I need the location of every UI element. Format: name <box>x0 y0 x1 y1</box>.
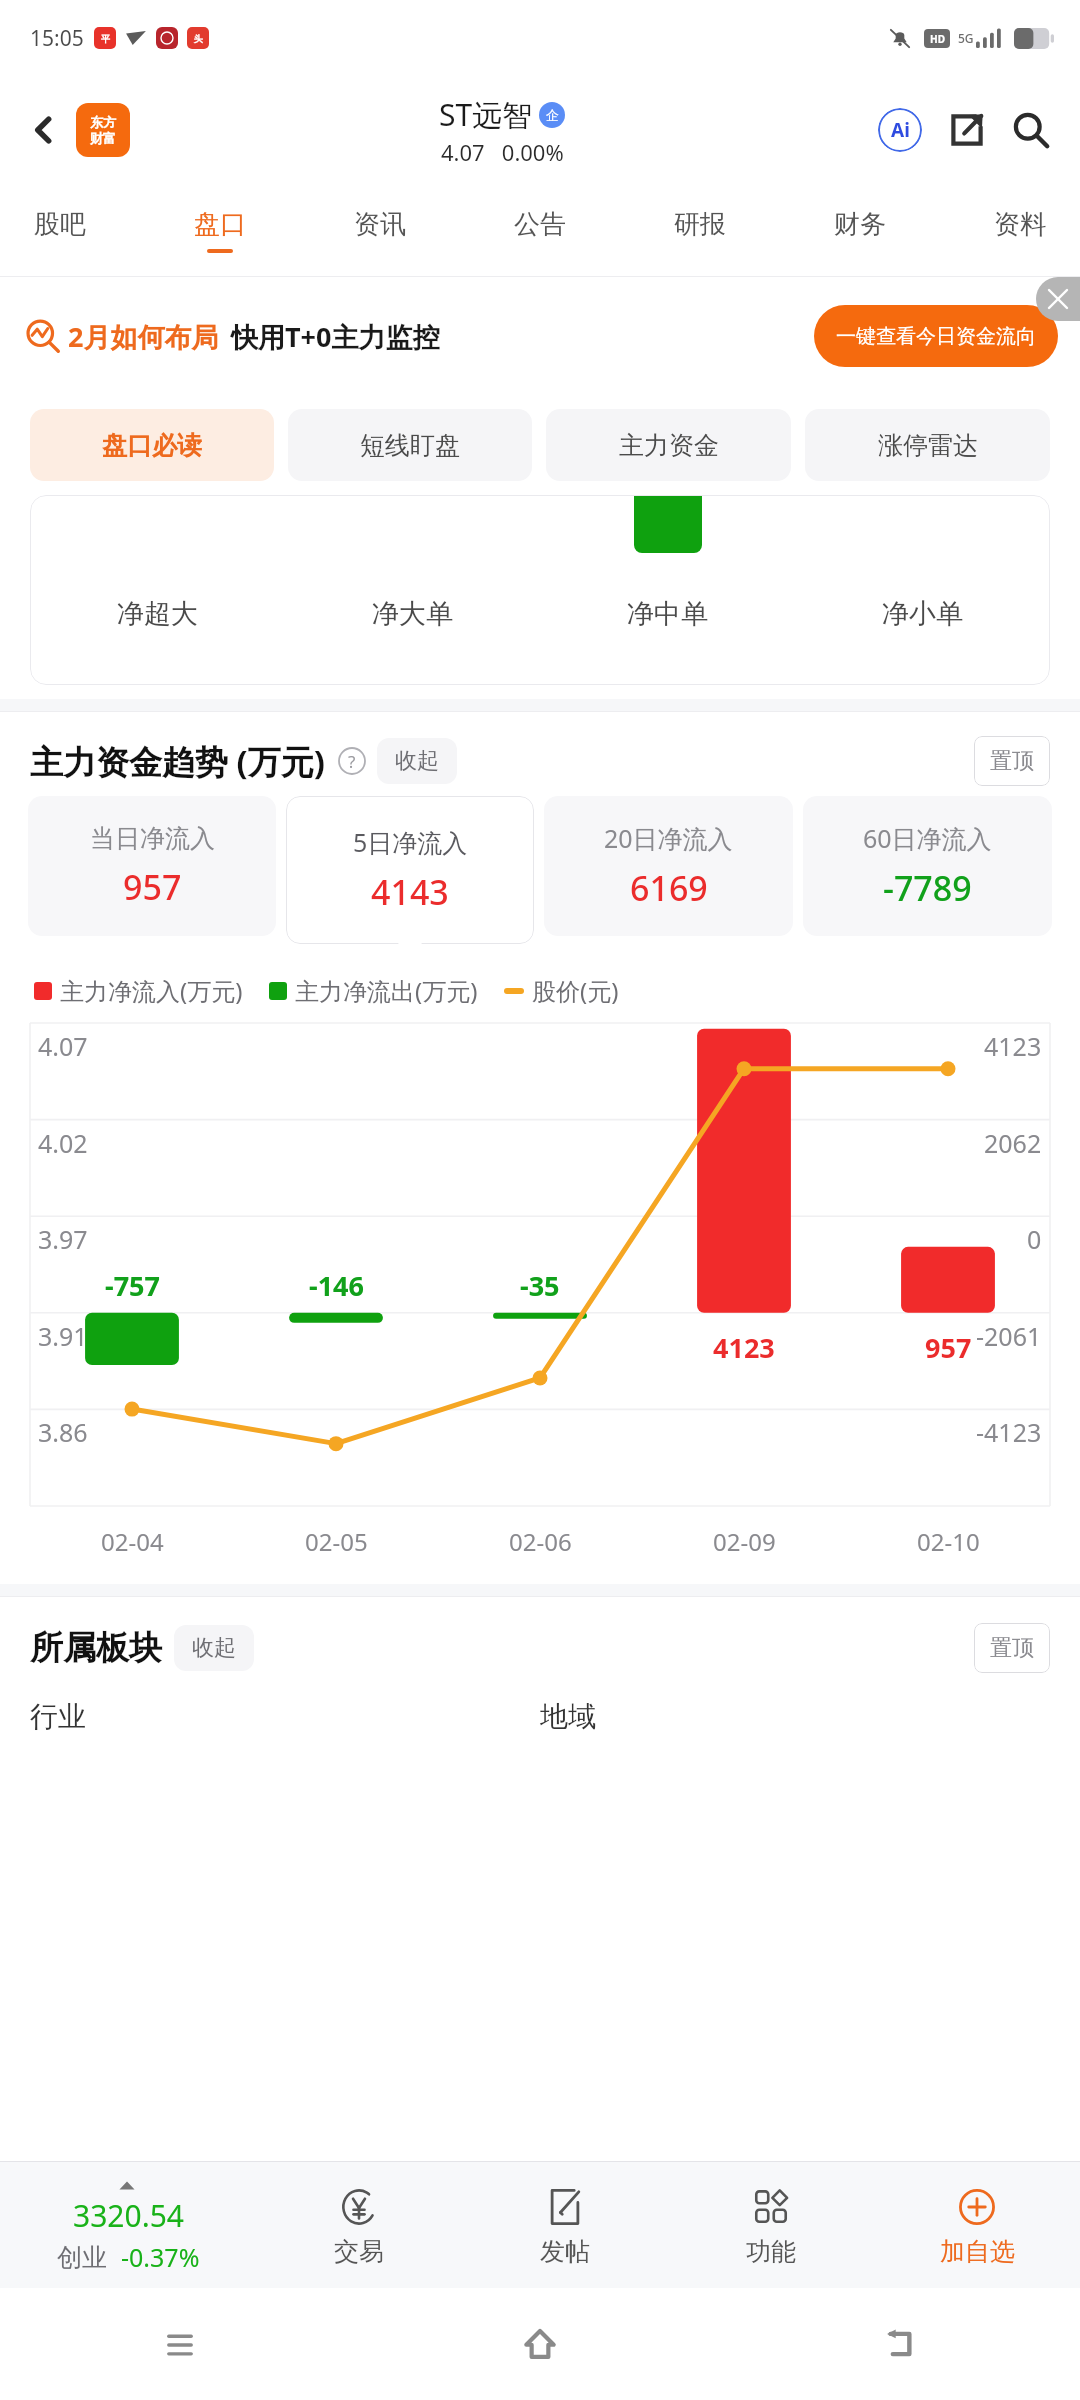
button[interactable]: 股吧 <box>34 184 86 276</box>
button[interactable]: 交易 <box>256 2162 462 2288</box>
button[interactable]: Back <box>720 2288 1080 2400</box>
staticText: 盘口 <box>194 208 246 241</box>
staticText: 5日净流入 <box>353 825 468 859</box>
button[interactable]: 加自选 <box>874 2162 1080 2288</box>
staticText: 02-09 <box>713 1525 776 1558</box>
button[interactable]: Search <box>1006 105 1056 155</box>
button[interactable]: Home <box>360 2288 720 2400</box>
button[interactable]: Share <box>942 105 992 155</box>
staticText: 957 <box>925 1329 972 1366</box>
staticText: 0 <box>1027 1222 1042 1256</box>
staticText: 6169 <box>630 865 708 911</box>
staticText: -35 <box>520 1267 560 1304</box>
staticText: 4123 <box>713 1329 775 1366</box>
staticText: 957 <box>123 864 182 910</box>
staticText: 15:05 <box>30 24 84 53</box>
staticText: 净大单 <box>372 597 453 631</box>
staticText: -2061 <box>976 1319 1042 1353</box>
staticText: 一键查看今日资金流向 <box>836 324 1036 349</box>
staticText: 主力资金 <box>619 430 719 461</box>
staticText: 02-04 <box>101 1525 164 1558</box>
staticText: 净超大 <box>117 597 198 631</box>
button[interactable]: 一键查看今日资金流向 <box>814 305 1058 367</box>
button[interactable]: 涨停雷达 <box>805 409 1050 481</box>
button[interactable]: 5日净流入 <box>286 796 534 944</box>
staticText: 4.07 <box>38 1029 88 1063</box>
staticText: 60日净流入 <box>863 821 992 855</box>
staticText: 3.91 <box>38 1319 88 1353</box>
button[interactable]: 20日净流入 <box>544 796 793 936</box>
staticText: 发帖 <box>540 2236 590 2267</box>
button[interactable]: 帮助 <box>337 746 367 776</box>
staticText: 地域 <box>540 1699 1050 1734</box>
staticText: 4143 <box>371 869 449 915</box>
staticText: 主力净流入(万元) <box>60 974 243 1007</box>
staticText: 当日净流入 <box>90 823 215 854</box>
button[interactable]: 置顶 <box>974 1623 1050 1673</box>
button[interactable]: 发帖 <box>462 2162 668 2288</box>
staticText: 研报 <box>674 208 726 241</box>
staticText: -757 <box>105 1267 160 1304</box>
staticText: 3.86 <box>38 1415 88 1449</box>
staticText: 快用T+0主力监控 <box>231 318 440 355</box>
staticText: 20日净流入 <box>604 821 733 855</box>
staticText: -146 <box>309 1267 364 1304</box>
staticText: 资讯 <box>354 208 406 241</box>
staticText: 主力资金趋势 (万元) <box>30 739 325 784</box>
button[interactable]: 60日净流入 <box>803 796 1052 936</box>
button[interactable]: 研报 <box>674 184 726 276</box>
button[interactable]: 盘口 <box>194 184 246 276</box>
staticText: 加自选 <box>940 2236 1015 2267</box>
button[interactable]: 功能 <box>668 2162 874 2288</box>
staticText: 东方 <box>90 114 116 130</box>
staticText: 3320.54 <box>73 2195 184 2236</box>
staticText: -7789 <box>883 865 972 911</box>
staticText: 净小单 <box>882 597 963 631</box>
button[interactable]: 净超大 <box>30 495 1050 685</box>
button[interactable]: 资料 <box>994 184 1046 276</box>
staticText: 净中单 <box>627 597 708 631</box>
button[interactable]: AI助手 <box>874 104 926 156</box>
staticText: 收起 <box>395 747 439 775</box>
button[interactable]: 收起 <box>174 1625 254 1671</box>
staticText: 3.97 <box>38 1222 88 1256</box>
staticText: 主力净流出(万元) <box>295 974 478 1007</box>
staticText: 行业 <box>30 1699 540 1734</box>
staticText: 4123 <box>984 1029 1042 1063</box>
staticText: 平 <box>101 33 110 44</box>
staticText: 企 <box>546 107 559 123</box>
staticText: ST远智 <box>439 94 533 135</box>
button[interactable]: 盘口必读 <box>30 409 274 481</box>
staticText: 头 <box>194 33 203 44</box>
staticText: 功能 <box>746 2236 796 2267</box>
button[interactable]: 3320.54 <box>0 2162 256 2288</box>
staticText: ? <box>348 750 356 773</box>
button[interactable]: 当日净流入 <box>28 796 276 936</box>
staticText: 4.07 0.00% <box>441 137 564 167</box>
button[interactable]: 主力资金 <box>546 409 791 481</box>
button[interactable]: Close ad <box>1036 277 1080 321</box>
button[interactable]: 公告 <box>514 184 566 276</box>
staticText: 置顶 <box>990 747 1034 775</box>
button[interactable]: 短线盯盘 <box>288 409 532 481</box>
staticText: 所属板块 <box>30 1627 162 1669</box>
button[interactable]: 财务 <box>834 184 886 276</box>
staticText: Ai <box>891 117 910 143</box>
staticText: 财务 <box>834 208 886 241</box>
staticText: 02-06 <box>509 1525 572 1558</box>
staticText: 2月如何布局 <box>68 318 219 355</box>
staticText: 2062 <box>984 1126 1042 1160</box>
button[interactable]: 资讯 <box>354 184 406 276</box>
staticText: 涨停雷达 <box>878 430 978 461</box>
staticText: HD <box>930 32 945 46</box>
button[interactable]: Recents <box>0 2288 360 2400</box>
button[interactable]: 收起 <box>377 738 457 784</box>
staticText: 4.02 <box>38 1126 88 1160</box>
staticText: 02-05 <box>305 1525 368 1558</box>
staticText: 02-10 <box>917 1525 980 1558</box>
button[interactable]: 东方财富 <box>76 103 130 157</box>
staticText: 盘口必读 <box>102 430 202 461</box>
staticText: 资料 <box>994 208 1046 241</box>
button[interactable]: Back <box>18 104 70 156</box>
button[interactable]: 置顶 <box>974 736 1050 786</box>
